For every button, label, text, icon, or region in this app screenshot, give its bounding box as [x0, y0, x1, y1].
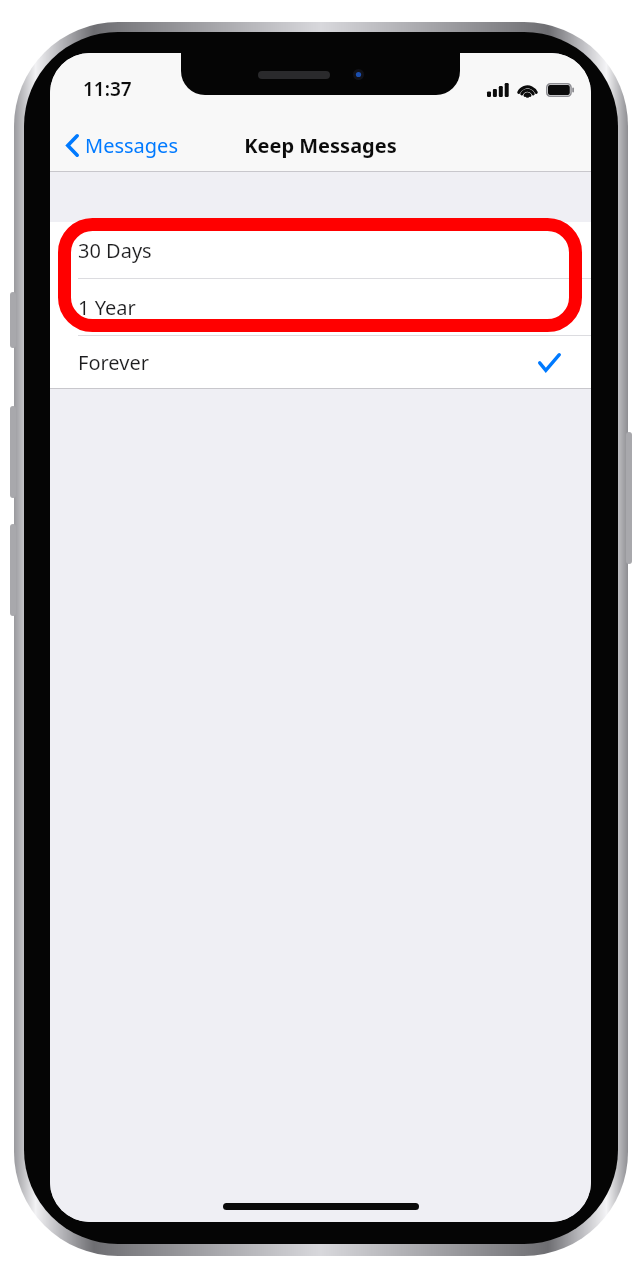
staticText: 11:37: [83, 76, 132, 102]
button[interactable]: Messages: [50, 126, 190, 165]
staticText: 1 Year: [78, 294, 136, 321]
other: Selected: [538, 353, 561, 372]
staticText: 30 Days: [78, 237, 152, 264]
button[interactable]: Forever: [50, 336, 591, 388]
staticText: Forever: [78, 349, 149, 376]
staticText: Keep Messages: [244, 132, 397, 159]
button[interactable]: 1 Year: [50, 279, 591, 336]
staticText: Messages: [85, 132, 178, 159]
button[interactable]: 30 Days: [50, 222, 591, 279]
